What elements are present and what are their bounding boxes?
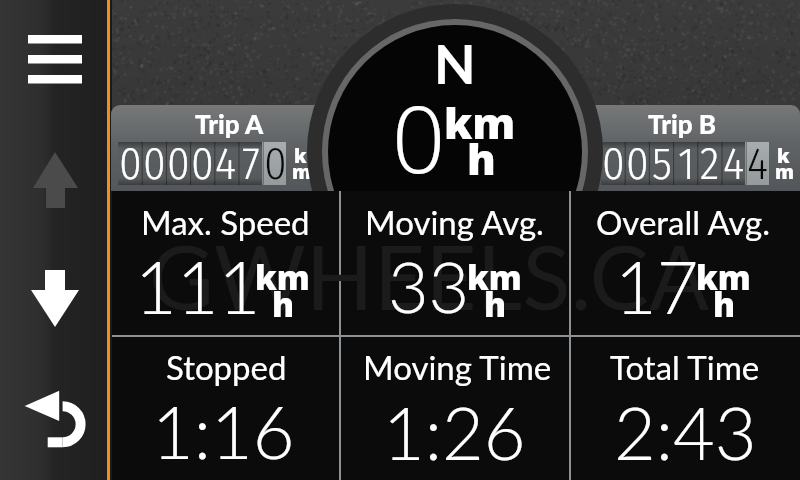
staticText: k [777,143,790,169]
staticText: Overall Avg. [596,202,771,242]
staticText: 4 [723,137,745,191]
button[interactable]: Back [18,385,90,453]
button[interactable] [112,191,339,335]
staticText: 1 [678,137,695,191]
staticText: m [292,159,311,185]
staticText: km [255,255,310,300]
staticText: Trip B [648,108,717,139]
button[interactable] [341,191,569,335]
staticText: 0 [191,137,214,191]
staticText: km [467,255,522,300]
staticText: N [434,31,476,96]
staticText: Max. Speed [141,202,310,242]
staticText: 0 [602,137,625,191]
staticText: Stopped [166,347,287,387]
button[interactable]: Scroll up [20,145,90,215]
staticText: Moving Time [363,347,552,387]
staticText: h [484,282,507,327]
staticText: 0 [119,137,142,191]
staticText: h [467,129,496,188]
staticText: 7 [242,137,260,191]
button[interactable] [571,191,800,335]
staticText: 0 [392,74,446,201]
button[interactable] [571,337,800,480]
staticText: GWHEELS.CA [149,222,710,329]
staticText: 0 [167,137,190,191]
staticText: 2 [700,137,720,191]
staticText: k [294,143,307,169]
staticText: 5 [652,137,672,191]
staticText: Total Time [610,347,760,387]
button[interactable] [112,337,339,480]
staticText: 17 [615,243,699,329]
button[interactable]: Scroll down [20,262,90,332]
staticText: km [696,255,751,300]
staticText: Trip A [195,108,264,139]
staticText: Moving Avg. [365,202,544,242]
staticText: km [444,93,516,152]
staticText: h [272,282,295,327]
staticText: 2:43 [614,389,757,475]
button[interactable] [563,105,800,191]
button[interactable] [111,105,348,191]
staticText: 4 [215,137,237,191]
staticText: m [775,159,794,185]
staticText: 0 [626,137,649,191]
button[interactable]: Menu [20,25,90,93]
staticText: 1:16 [152,388,295,474]
staticText: 0 [143,137,166,191]
staticText: 4 [747,137,769,191]
staticText: 1:26 [383,389,526,475]
staticText: 111 [135,243,261,329]
staticText: h [713,282,736,327]
button[interactable] [341,337,569,480]
staticText: 33 [388,244,470,328]
staticText: 0 [264,137,287,191]
